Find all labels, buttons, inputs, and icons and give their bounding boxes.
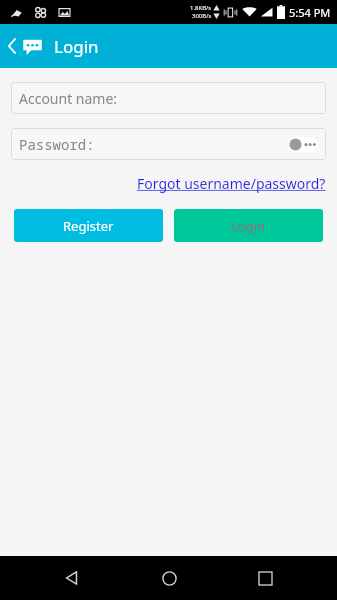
button[interactable]: Register (14, 209, 163, 242)
button[interactable]: Forgot username/password? (137, 172, 337, 195)
button[interactable]: Home (145, 556, 193, 600)
staticText: Login (231, 217, 266, 235)
button[interactable]: Recent apps (241, 556, 289, 600)
staticText: Password: (19, 135, 95, 154)
other: Back (8, 37, 17, 55)
staticText: 5:54 PM (289, 5, 331, 20)
button[interactable]: Password: (11, 128, 326, 160)
button[interactable]: Login (174, 209, 323, 242)
staticText: Register (63, 217, 114, 235)
staticText: Forgot username/password? (137, 174, 326, 193)
staticText: 1.8KB/s (190, 4, 212, 12)
button[interactable]: Back (48, 556, 96, 600)
staticText: 300B/s (192, 12, 212, 20)
button[interactable]: Back (0, 24, 337, 68)
button[interactable]: Account name: (11, 82, 326, 114)
button[interactable]: Show password (288, 137, 318, 152)
other: Messages (22, 36, 43, 57)
staticText: Login (54, 35, 99, 58)
staticText: Account name: (19, 89, 118, 108)
